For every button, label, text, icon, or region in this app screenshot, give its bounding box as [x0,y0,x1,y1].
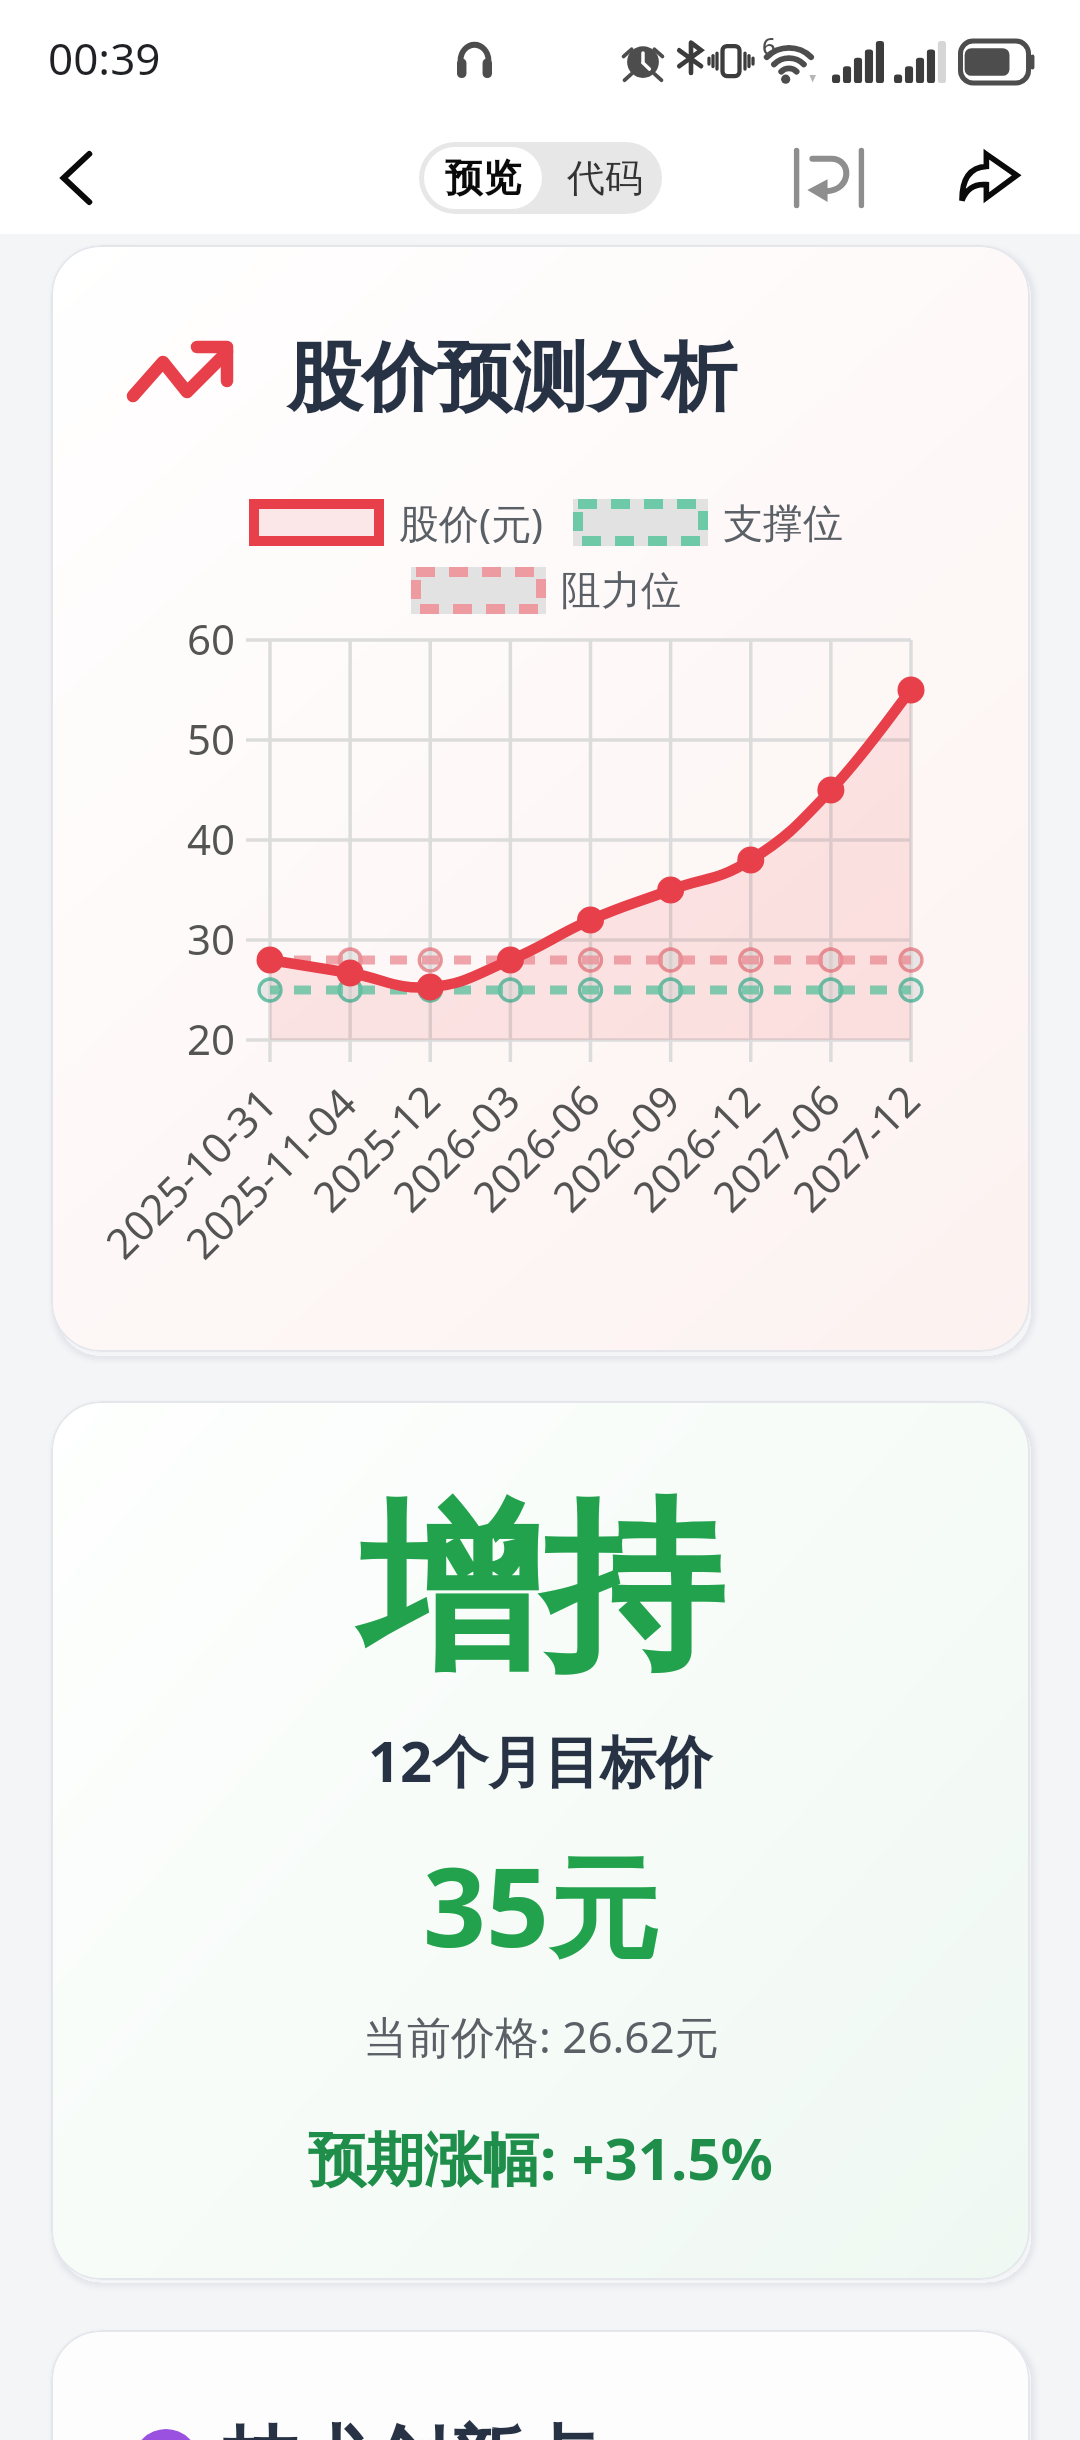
staticText: 2027-06 [699,1071,851,1223]
staticText: 股价(元) [399,495,543,550]
staticText: 6 [762,29,776,62]
staticText: 2026-06 [459,1071,611,1223]
button[interactable]: Flip orientation [786,135,872,221]
staticText: 60 [145,610,235,667]
button[interactable]: 技术创新点 [51,2330,1030,2440]
staticText: 2026-03 [379,1071,531,1223]
staticText: 00:39 [48,28,161,88]
staticText: 2026-12 [619,1071,771,1223]
staticText: 支撑位 [723,498,843,548]
staticText: 预览 [445,154,521,202]
staticText: 12个月目标价 [368,1722,713,1798]
staticText: 预期涨幅: +31.5% [308,2118,773,2197]
staticText: 35元 [423,1829,659,1979]
staticText: 50 [145,710,235,767]
button[interactable]: Back [36,137,118,219]
staticText: 股价预测分析 [287,331,737,425]
staticText: 阻力位 [561,565,681,615]
staticText: 技术创新点 [223,2415,598,2440]
staticText: 2025-12 [299,1071,451,1223]
staticText: 20 [145,1010,235,1067]
staticText: 当前价格: 26.62元 [363,2006,719,2066]
staticText: 2027-12 [779,1071,931,1223]
button[interactable]: 代码 [547,142,662,214]
staticText: 2025-10-31 [92,1074,288,1270]
staticText: 30 [145,910,235,967]
button[interactable]: 增持 [51,1401,1030,2280]
staticText: 代码 [567,154,643,202]
button[interactable]: 预览 [424,147,542,209]
staticText: 2026-09 [539,1071,691,1223]
staticText: 增持 [359,1475,723,1704]
button[interactable]: 股价预测分析 [51,245,1030,1352]
staticText: 2025-11-04 [172,1074,368,1270]
button[interactable]: Share [946,135,1032,221]
staticText: 40 [145,810,235,867]
